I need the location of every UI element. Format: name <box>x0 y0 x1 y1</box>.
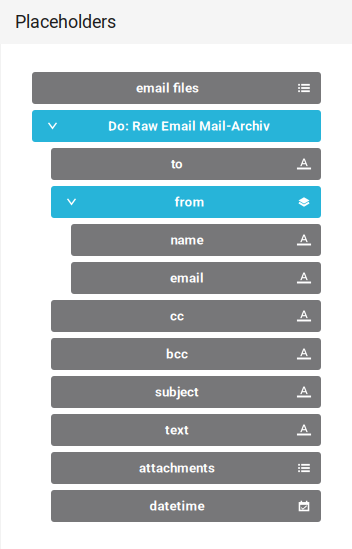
button[interactable]: attachments <box>32 452 321 484</box>
button[interactable]: cc <box>32 300 321 332</box>
button[interactable]: email <box>32 262 321 294</box>
button[interactable]: bcc <box>32 338 321 370</box>
button[interactable]: to <box>32 148 321 180</box>
staticText: bcc <box>166 346 188 362</box>
staticText: email files <box>136 80 199 96</box>
staticText: email <box>170 270 204 286</box>
staticText: Placeholders <box>15 11 116 32</box>
staticText: to <box>171 156 183 172</box>
button[interactable]: email files <box>32 72 321 104</box>
staticText: text <box>165 422 189 438</box>
staticText: cc <box>170 308 184 324</box>
button[interactable]: Do: Raw Email Mail-Archiv <box>32 110 321 142</box>
staticText: from <box>174 194 204 210</box>
staticText: attachments <box>139 460 215 476</box>
staticText: subject <box>155 384 199 400</box>
staticText: name <box>170 232 203 248</box>
button[interactable]: subject <box>32 376 321 408</box>
staticText: datetime <box>149 498 204 514</box>
button[interactable]: name <box>32 224 321 256</box>
button[interactable]: datetime <box>32 490 321 522</box>
button[interactable]: text <box>32 414 321 446</box>
staticText: Do: Raw Email Mail-Archiv <box>108 118 270 134</box>
button[interactable]: from <box>32 186 321 218</box>
